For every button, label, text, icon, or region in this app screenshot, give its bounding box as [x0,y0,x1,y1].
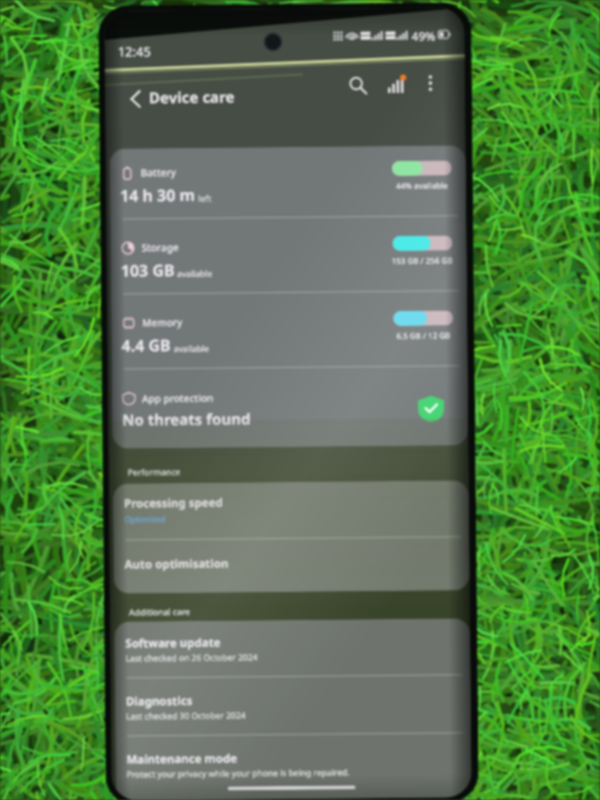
button[interactable]: Back [119,82,151,115]
staticText: left [196,193,212,205]
staticText: available [171,343,209,355]
button[interactable]: Battery [109,145,466,219]
button[interactable]: Diagnostics [115,676,471,736]
staticText: Storage [141,240,179,254]
staticText: Memory [142,315,183,329]
staticText: 6.5 GB / 12 GB [396,329,450,341]
staticText: 49% [411,28,435,42]
button[interactable]: App protection [112,371,468,447]
staticText: Processing speed [124,495,223,511]
staticText: 103 GB [121,259,175,282]
button[interactable]: Auto optimisation [113,537,470,591]
staticText: 153 GB / 256 GB [392,254,453,266]
staticText: 44% available [396,179,449,191]
staticText: available [175,268,213,280]
staticText: Protect your privacy while your phone is… [126,766,350,780]
staticText: App protection [142,391,214,405]
staticText: 14 h 30 m [120,184,196,207]
staticText: Auto optimisation [124,556,229,573]
staticText: Additional care [129,606,191,618]
button[interactable]: Usage statistics [381,69,411,99]
button[interactable]: More options [415,67,445,98]
staticText: Device care [149,86,235,107]
staticText: Battery [141,165,177,179]
button[interactable]: Search [343,70,373,100]
staticText: No threats found [122,408,251,430]
button[interactable]: Software update [114,618,471,678]
button[interactable]: Processing speed [113,480,469,539]
button[interactable]: Maintenance mode [115,734,472,794]
staticText: Maintenance mode [126,750,237,768]
button[interactable]: Memory [111,295,468,369]
staticText: Last checked on 26 October 2024 [125,651,258,665]
staticText: Optimised [124,513,166,526]
staticText: Performance [128,466,181,478]
staticText: 4.4 GB [121,334,171,357]
staticText: Last checked 30 October 2024 [126,709,246,723]
staticText: Diagnostics [126,693,193,709]
staticText: 12:45 [117,42,152,61]
staticText: Software update [125,635,221,652]
button[interactable]: Storage [110,220,467,294]
